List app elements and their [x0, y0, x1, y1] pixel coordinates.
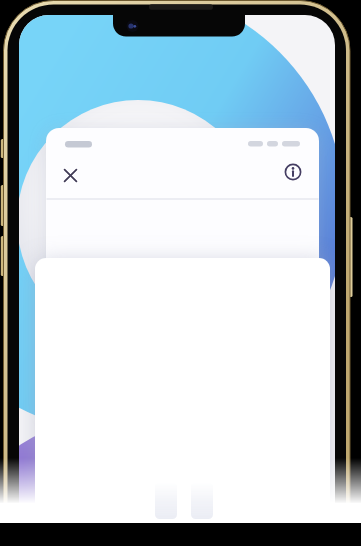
button[interactable]	[282, 161, 304, 183]
button[interactable]	[155, 482, 177, 519]
button[interactable]	[59, 164, 81, 186]
button[interactable]	[63, 138, 94, 150]
button[interactable]	[191, 482, 213, 519]
